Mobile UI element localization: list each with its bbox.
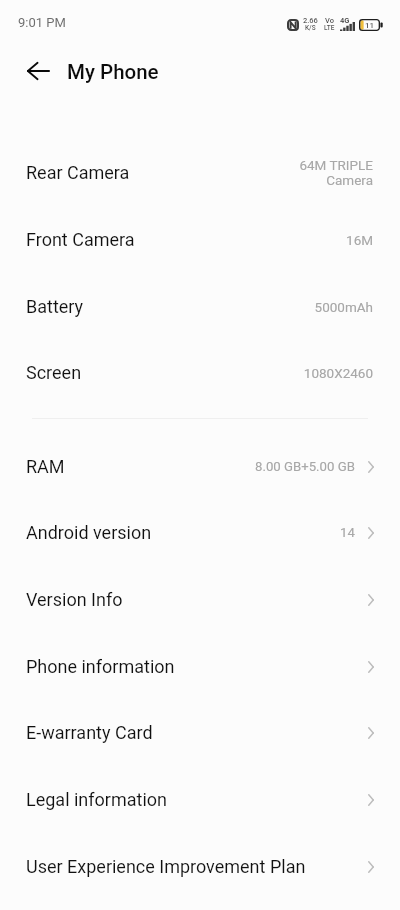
staticText: 8.00 GB+5.00 GB	[255, 459, 355, 474]
staticText: My Phone	[67, 60, 159, 84]
staticText: User Experience Improvement Plan	[26, 856, 306, 877]
staticText: 4G	[340, 16, 350, 25]
staticText: 14	[340, 525, 355, 540]
staticText: K/S	[305, 24, 316, 32]
staticText: 1080X2460	[303, 365, 373, 381]
staticText: RAM	[26, 456, 65, 477]
button[interactable]: Back	[18, 51, 58, 91]
staticText: E-warranty Card	[26, 722, 153, 743]
staticText: Android version	[26, 522, 152, 543]
staticText: 2.66	[303, 16, 318, 25]
button[interactable]: Android version	[0, 499, 400, 566]
staticText: Rear Camera	[26, 162, 130, 183]
staticText: Vo	[325, 16, 334, 25]
button[interactable]: Legal information	[0, 766, 400, 833]
staticText: 5000mAh	[314, 299, 373, 315]
button[interactable]: Front Camera	[0, 206, 400, 273]
staticText: 9:01 PM	[18, 15, 66, 30]
staticText: 11	[365, 21, 375, 30]
button[interactable]: Phone information	[0, 633, 400, 700]
button[interactable]: Battery	[0, 273, 400, 340]
staticText: 16M	[346, 232, 373, 248]
staticText: Phone information	[26, 656, 175, 677]
button[interactable]: RAM	[0, 433, 400, 500]
staticText: Screen	[26, 362, 82, 383]
staticText: Version Info	[26, 589, 123, 610]
staticText: Front Camera	[26, 229, 135, 250]
button[interactable]: User Experience Improvement Plan	[0, 833, 400, 900]
button[interactable]: E-warranty Card	[0, 699, 400, 766]
button[interactable]: Version Info	[0, 566, 400, 633]
button[interactable]: Rear Camera	[0, 139, 400, 206]
button[interactable]: Screen	[0, 339, 400, 406]
staticText: 64M TRIPLE Camera	[299, 157, 373, 188]
staticText: Legal information	[26, 789, 167, 810]
staticText: LTE	[324, 24, 335, 32]
staticText: Battery	[26, 296, 84, 317]
